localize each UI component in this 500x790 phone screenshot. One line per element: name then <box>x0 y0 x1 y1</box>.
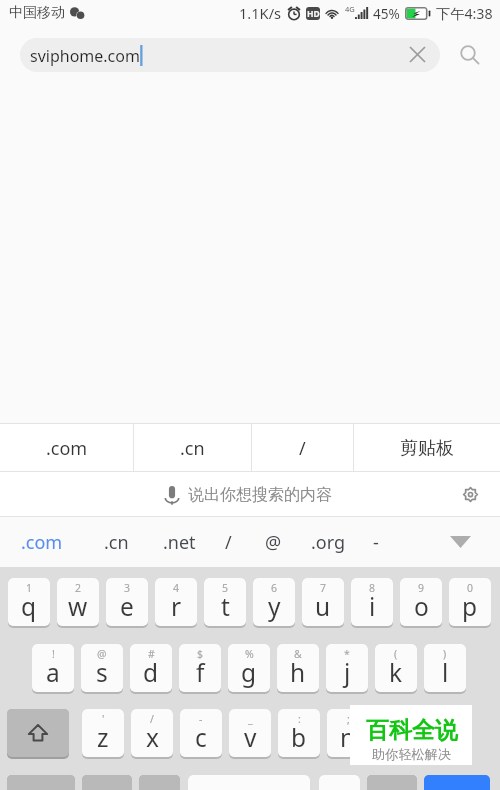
staticText: * <box>344 647 350 661</box>
staticText: p <box>462 590 478 623</box>
button[interactable]: @ <box>265 530 282 555</box>
button[interactable]: / <box>252 424 353 472</box>
button[interactable]: ; <box>327 709 369 757</box>
button[interactable]: More <box>367 775 417 790</box>
button[interactable]: sviphome.com <box>20 38 440 72</box>
staticText: k <box>389 656 403 689</box>
staticText: 2 <box>75 581 82 595</box>
staticText: m <box>386 721 409 754</box>
staticText: , <box>396 712 399 726</box>
button[interactable]: 7 <box>302 578 344 626</box>
button[interactable]: 1 <box>8 578 50 626</box>
button[interactable]: 6 <box>253 578 295 626</box>
button[interactable]: - <box>180 709 222 757</box>
staticText: ! <box>52 647 55 661</box>
button[interactable]: 5 <box>204 578 246 626</box>
staticText: 1.1K/s <box>239 3 282 23</box>
staticText: 0 <box>467 581 474 595</box>
button[interactable]: ) <box>424 644 466 692</box>
staticText: sviphome.com <box>30 45 140 67</box>
staticText: f <box>196 656 205 689</box>
button[interactable]: .org <box>311 530 346 555</box>
button[interactable]: Go <box>424 775 490 790</box>
button[interactable]: Settings <box>440 472 500 517</box>
staticText: b <box>291 721 307 754</box>
button[interactable]: Shift <box>7 709 69 757</box>
button[interactable]: ( <box>375 644 417 692</box>
button[interactable]: : <box>278 709 320 757</box>
staticText: & <box>294 647 302 661</box>
staticText: d <box>143 656 159 689</box>
staticText: 4G <box>345 4 355 14</box>
staticText: ; <box>347 712 350 726</box>
button[interactable]: # <box>130 644 172 692</box>
staticText: l <box>442 656 449 689</box>
staticText: .com <box>21 530 63 555</box>
button[interactable]: , <box>376 709 418 757</box>
staticText: HD <box>307 8 320 20</box>
staticText: ' <box>102 712 105 726</box>
staticText: - <box>373 530 379 555</box>
staticText: @ <box>97 647 107 661</box>
staticText: a <box>46 656 60 689</box>
staticText: q <box>21 590 37 623</box>
staticText: y <box>268 590 281 623</box>
staticText: 剪贴板 <box>400 437 454 460</box>
staticText: 45% <box>373 4 400 23</box>
staticText: $ <box>197 647 204 661</box>
staticText: / <box>150 712 154 726</box>
staticText: 5 <box>222 581 229 595</box>
button[interactable]: Collapse keyboard <box>420 517 500 567</box>
button[interactable]: * <box>326 644 368 692</box>
button[interactable]: % <box>228 644 270 692</box>
staticText: 3 <box>124 581 131 595</box>
button[interactable]: @ <box>81 644 123 692</box>
staticText: .cn <box>104 530 129 555</box>
staticText: r <box>171 590 182 623</box>
button[interactable]: 说出你想搜索的内容 <box>165 485 332 505</box>
button[interactable]: _ <box>229 709 271 757</box>
button[interactable]: ' <box>82 709 124 757</box>
button[interactable]: 0 <box>449 578 491 626</box>
button[interactable]: 剪贴板 <box>354 424 500 472</box>
button[interactable]: Language <box>82 775 132 790</box>
staticText: : <box>298 712 301 726</box>
button[interactable]: Clear <box>400 38 434 72</box>
staticText: u <box>315 590 331 623</box>
staticText: ( <box>394 647 398 661</box>
button[interactable]: / <box>131 709 173 757</box>
button[interactable]: Period <box>319 775 360 790</box>
staticText: 4 <box>173 581 180 595</box>
button[interactable]: Search <box>440 38 500 72</box>
button[interactable]: .net <box>163 530 196 555</box>
button[interactable]: .com <box>0 424 133 472</box>
staticText: ) <box>443 647 447 661</box>
staticText: 9 <box>418 581 425 595</box>
staticText: - <box>199 712 203 726</box>
button[interactable]: 9 <box>400 578 442 626</box>
button[interactable]: $ <box>179 644 221 692</box>
button[interactable]: Emoji <box>139 775 180 790</box>
staticText: i <box>369 590 376 623</box>
button[interactable]: - <box>373 530 379 555</box>
button[interactable]: .com <box>21 530 63 555</box>
staticText: 下午4:38 <box>436 4 493 23</box>
button[interactable]: .cn <box>104 530 129 555</box>
staticText: h <box>290 656 306 689</box>
button[interactable]: 2 <box>57 578 99 626</box>
button[interactable]: 3 <box>106 578 148 626</box>
button[interactable]: & <box>277 644 319 692</box>
staticText: o <box>414 590 429 623</box>
button[interactable]: 4 <box>155 578 197 626</box>
button[interactable]: / <box>225 530 232 555</box>
staticText: / <box>225 530 232 555</box>
button[interactable]: 8 <box>351 578 393 626</box>
staticText: .net <box>163 530 196 555</box>
staticText: t <box>221 590 230 623</box>
staticText: / <box>299 436 306 461</box>
button[interactable]: .cn <box>134 424 251 472</box>
button[interactable]: ! <box>32 644 74 692</box>
staticText: z <box>97 721 109 754</box>
